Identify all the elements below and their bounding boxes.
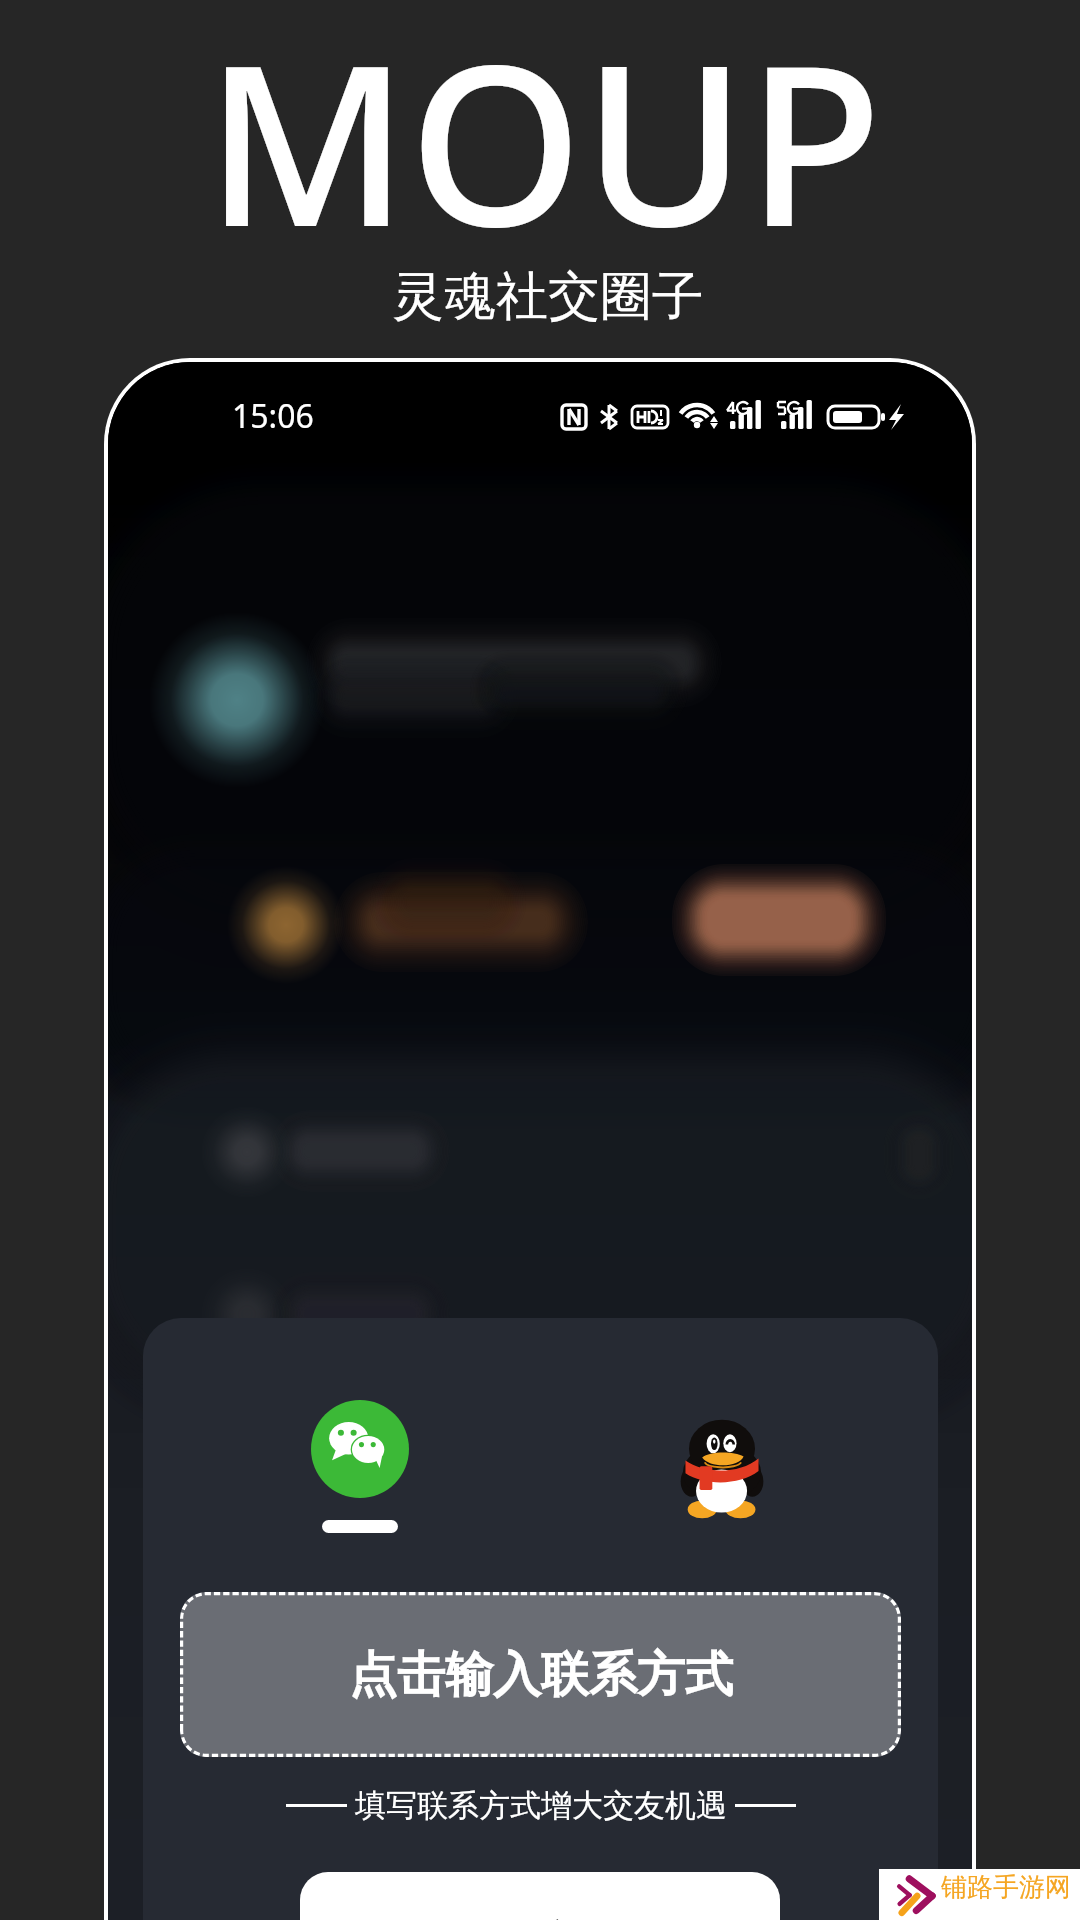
button[interactable]: 确定 [300, 1872, 780, 1920]
staticText: 确定 [502, 1916, 578, 1920]
staticText: 15:06 [232, 394, 314, 438]
staticText: MOUP [205, 0, 883, 291]
button[interactable]: QQ [678, 1417, 766, 1522]
staticText: 点击输入联系方式 [349, 1645, 733, 1705]
staticText: 灵魂社交圈子 [392, 264, 704, 330]
staticText: 铺路手游网 [941, 1871, 1071, 1904]
button[interactable]: 点击输入联系方式 [180, 1592, 901, 1757]
staticText: 填写联系方式增大交友机遇 [355, 1786, 727, 1825]
button[interactable]: 微信 [311, 1400, 409, 1533]
